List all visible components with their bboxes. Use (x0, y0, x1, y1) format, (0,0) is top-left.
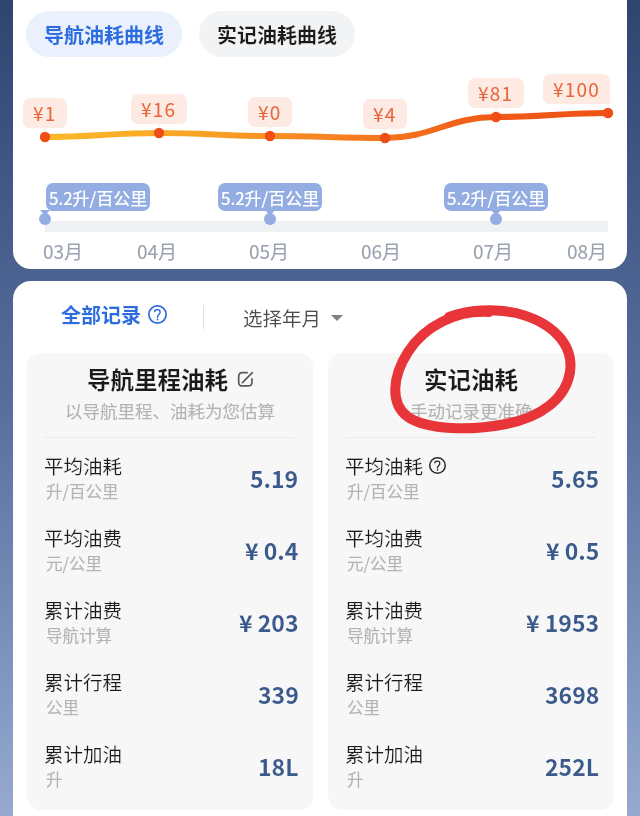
staticText: 平均油费 (44, 523, 123, 551)
staticText: 5.65 (551, 461, 600, 494)
button[interactable]: 选择年月 (243, 303, 343, 331)
staticText: 公里 (347, 695, 380, 719)
button[interactable]: 平均油费 (345, 513, 600, 585)
staticText: ¥1 (33, 99, 57, 127)
staticText: ¥100 (553, 75, 600, 103)
staticText: 5.19 (250, 461, 299, 494)
staticText: 5.2升/百公里 (221, 185, 320, 210)
staticText: ¥81 (478, 79, 514, 107)
staticText: 5.2升/百公里 (49, 185, 148, 210)
staticText: 累计行程 (44, 667, 123, 695)
staticText: ¥4 (373, 100, 397, 128)
staticText: 导航计算 (46, 623, 112, 647)
staticText: 导航油耗曲线 (44, 20, 164, 49)
staticText: 252L (545, 749, 600, 782)
other: More info (429, 457, 446, 474)
staticText: 升/百公里 (347, 479, 420, 503)
staticText: 累计加油 (44, 739, 123, 767)
staticText: 实记油耗 (424, 362, 518, 396)
staticText: 5.2升/百公里 (447, 185, 546, 210)
button[interactable]: 导航油耗曲线 (26, 11, 182, 57)
staticText: 08月 (567, 237, 608, 265)
staticText: 平均油费 (345, 523, 424, 551)
button[interactable]: 累计油费 (345, 585, 600, 657)
staticText: 元/公里 (347, 551, 403, 575)
button[interactable]: 全部记录 (61, 300, 167, 329)
staticText: 339 (258, 677, 299, 710)
staticText: 3698 (545, 677, 600, 710)
staticText: ¥ 1953 (526, 605, 600, 638)
staticText: ¥ 0.4 (245, 533, 299, 566)
staticText: 以导航里程、油耗为您估算 (65, 398, 275, 423)
other: Edit (237, 371, 254, 388)
staticText: 公里 (46, 695, 79, 719)
staticText: 累计油费 (44, 595, 123, 623)
other: More info (148, 305, 167, 324)
staticText: 导航里程油耗 (87, 362, 228, 396)
staticText: 累计加油 (345, 739, 424, 767)
staticText: ¥ 203 (239, 605, 299, 638)
staticText: ¥16 (141, 95, 177, 123)
staticText: 累计行程 (345, 667, 424, 695)
staticText: 平均油耗 (345, 451, 424, 479)
staticText: 05月 (249, 237, 290, 265)
staticText: ¥ 0.5 (546, 533, 600, 566)
button[interactable]: 实记油耗曲线 (199, 11, 355, 57)
button[interactable]: 累计加油 (345, 729, 600, 801)
staticText: 平均油耗 (44, 451, 123, 479)
button[interactable]: 平均油耗 (44, 441, 299, 513)
button[interactable]: 累计行程 (44, 657, 299, 729)
staticText: 实记油耗曲线 (217, 20, 337, 49)
staticText: ¥0 (258, 98, 282, 126)
staticText: 升 (46, 767, 63, 791)
staticText: 03月 (43, 237, 84, 265)
button[interactable]: 平均油费 (44, 513, 299, 585)
button[interactable]: 累计行程 (345, 657, 600, 729)
staticText: 07月 (473, 237, 514, 265)
staticText: 全部记录 (61, 300, 141, 329)
staticText: 元/公里 (46, 551, 102, 575)
button[interactable]: 累计加油 (44, 729, 299, 801)
staticText: 导航计算 (347, 623, 413, 647)
staticText: 累计油费 (345, 595, 424, 623)
staticText: 选择年月 (243, 303, 322, 331)
staticText: 升 (347, 767, 364, 791)
staticText: 06月 (361, 237, 402, 265)
staticText: 手动记录更准确 (410, 398, 533, 423)
button[interactable]: 累计油费 (44, 585, 299, 657)
staticText: 04月 (137, 237, 178, 265)
button[interactable]: 平均油耗 (345, 441, 600, 513)
staticText: 18L (258, 749, 299, 782)
staticText: 升/百公里 (46, 479, 119, 503)
